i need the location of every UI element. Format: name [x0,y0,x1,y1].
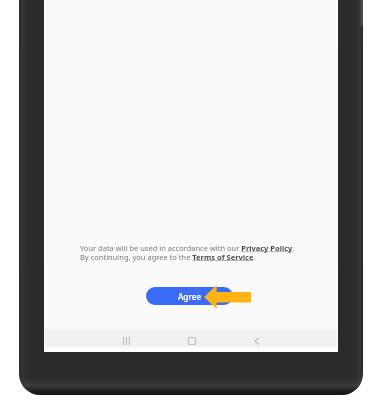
button[interactable]: Privacy Policy [243,243,295,253]
button[interactable]: Agree [146,287,233,305]
button[interactable]: Terms of Service [188,252,250,262]
staticText: Agree [178,291,202,302]
staticText: Your data will be used in accordance wit… [80,243,295,262]
other: Pointer arrow [204,285,251,309]
button[interactable]: Back [224,330,289,352]
button[interactable]: Recent apps [93,330,159,352]
button[interactable]: Home [159,330,224,352]
